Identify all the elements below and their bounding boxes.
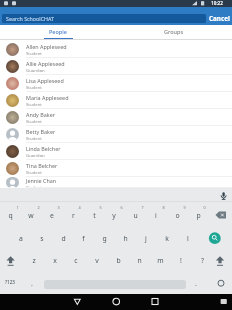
button[interactable]: People [0, 25, 116, 38]
staticText: 10:22 [211, 0, 223, 6]
staticText: Tina Belcher [26, 162, 58, 169]
staticText: x [53, 256, 57, 265]
staticText: q [8, 211, 13, 220]
staticText: c [74, 256, 78, 265]
staticText: Allen Appleseed [26, 43, 67, 50]
staticText: d [61, 234, 66, 243]
staticText: Student [26, 101, 42, 107]
button[interactable]: Andy Baker [0, 109, 232, 126]
button[interactable]: Search SchoolCHAT [2, 14, 206, 23]
staticText: Search SchoolCHAT [6, 15, 54, 22]
button[interactable]: Jennie Chan [0, 177, 232, 188]
staticText: z [32, 256, 36, 265]
staticText: i [155, 211, 157, 220]
staticText: g [102, 234, 107, 243]
staticText: 3 [57, 205, 60, 210]
staticText: Allie Appleseed [26, 60, 65, 67]
staticText: People [49, 28, 67, 35]
staticText: b [116, 256, 121, 265]
staticText: ? [201, 256, 204, 265]
staticText: Maria Appleseed [26, 94, 69, 101]
staticText: Jennie Chan [26, 177, 57, 184]
staticText: Student [26, 169, 42, 175]
staticText: v [95, 256, 99, 265]
button[interactable]: Tina Belcher [0, 160, 232, 177]
staticText: 2 [37, 205, 40, 210]
staticText: , [31, 280, 33, 288]
staticText: . [195, 279, 197, 288]
staticText: o [175, 211, 180, 220]
button[interactable]: Betty Baker [0, 126, 232, 143]
staticText: t [93, 211, 96, 220]
staticText: Cancel [209, 14, 230, 23]
staticText: 6 [120, 205, 123, 210]
staticText: ! [180, 256, 182, 265]
staticText: y [112, 211, 116, 220]
staticText: a [19, 234, 23, 243]
staticText: 7 [141, 205, 144, 210]
button[interactable] [90, 294, 116, 310]
button[interactable]: Lisa Appleseed [0, 75, 232, 92]
button[interactable]: Maria Appleseed [0, 92, 232, 109]
button[interactable]: Allie Appleseed [0, 58, 232, 75]
staticText: Groups [164, 28, 184, 35]
staticText: 9 [183, 205, 186, 210]
staticText: 4 [78, 205, 81, 210]
staticText: Linda Belcher [26, 145, 61, 152]
staticText: m [157, 256, 164, 265]
staticText: r [72, 211, 75, 220]
staticText: l [187, 234, 189, 243]
staticText: Student [26, 50, 42, 56]
button[interactable]: Cancel [206, 12, 232, 25]
staticText: 0 [203, 205, 206, 210]
staticText: Student [26, 135, 42, 141]
staticText: Betty Baker [26, 128, 56, 135]
staticText: Guardian [26, 67, 45, 73]
staticText: k [165, 234, 169, 243]
staticText: Andy Baker [26, 111, 55, 118]
staticText: h [123, 234, 128, 243]
staticText: s [40, 234, 44, 243]
button[interactable]: Allen Appleseed [0, 41, 232, 58]
staticText: 8 [162, 205, 165, 210]
staticText: u [133, 211, 138, 220]
button[interactable]: Groups [116, 25, 232, 38]
button[interactable] [116, 294, 142, 310]
staticText: p [196, 211, 201, 220]
staticText: j [145, 234, 147, 243]
staticText: ?123 [5, 279, 15, 285]
staticText: 5 [99, 205, 102, 210]
staticText: w [28, 211, 34, 220]
button[interactable]: Linda Belcher [0, 143, 232, 160]
staticText: Student [26, 184, 42, 188]
staticText: 1 [16, 205, 19, 210]
button[interactable] [64, 294, 90, 310]
staticText: e [50, 211, 54, 220]
staticText: f [82, 234, 85, 243]
staticText: Lisa Appleseed [26, 77, 64, 84]
staticText: n [137, 256, 142, 265]
staticText: Guardian [26, 152, 45, 158]
staticText: Student [26, 118, 42, 124]
staticText: Student [26, 84, 42, 90]
